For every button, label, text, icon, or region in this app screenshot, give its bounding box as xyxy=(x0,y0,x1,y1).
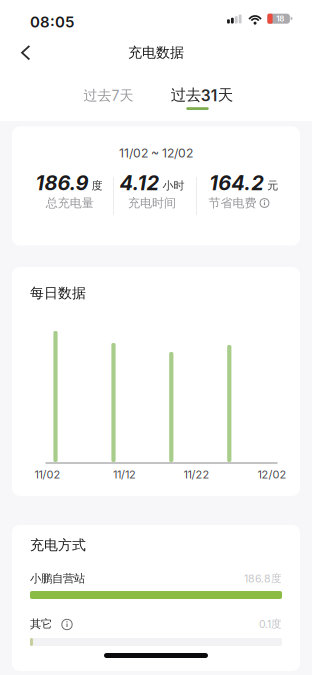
staticText: 11/22 xyxy=(183,468,209,481)
staticText: 充电数据 xyxy=(128,44,184,61)
staticText: 11/02 xyxy=(34,468,60,481)
button[interactable]: 节省电费 xyxy=(208,195,269,210)
staticText: 11/12 xyxy=(113,468,136,481)
staticText: 18 xyxy=(276,14,284,24)
staticText: 充电时间 xyxy=(128,195,176,210)
staticText: 小时 xyxy=(162,179,184,192)
staticText: 过去31天 xyxy=(171,85,233,105)
staticText: 元 xyxy=(267,179,278,192)
button[interactable] xyxy=(7,37,43,68)
staticText: 其它 xyxy=(30,617,52,631)
staticText: 4.12 xyxy=(119,171,159,195)
staticText: 充电方式 xyxy=(30,536,86,554)
staticText: 每日数据 xyxy=(30,284,86,302)
button[interactable]: 过去31天 xyxy=(157,80,247,110)
button[interactable] xyxy=(61,619,73,630)
staticText: 164.2 xyxy=(209,171,264,195)
staticText: 186.9 xyxy=(35,171,88,195)
staticText: 节省电费 xyxy=(208,195,256,210)
staticText: 186.8度 xyxy=(244,572,282,585)
staticText: 总充电量 xyxy=(46,195,94,210)
staticText: 0.1度 xyxy=(259,617,282,631)
staticText: 12/02 xyxy=(257,468,286,481)
staticText: 11/02 ~ 12/02 xyxy=(119,146,193,160)
staticText: 08:05 xyxy=(30,13,74,31)
button[interactable]: 过去7天 xyxy=(66,80,150,110)
staticText: 小鹏自营站 xyxy=(30,571,85,586)
staticText: 度 xyxy=(91,179,102,192)
staticText: 过去7天 xyxy=(83,87,133,104)
